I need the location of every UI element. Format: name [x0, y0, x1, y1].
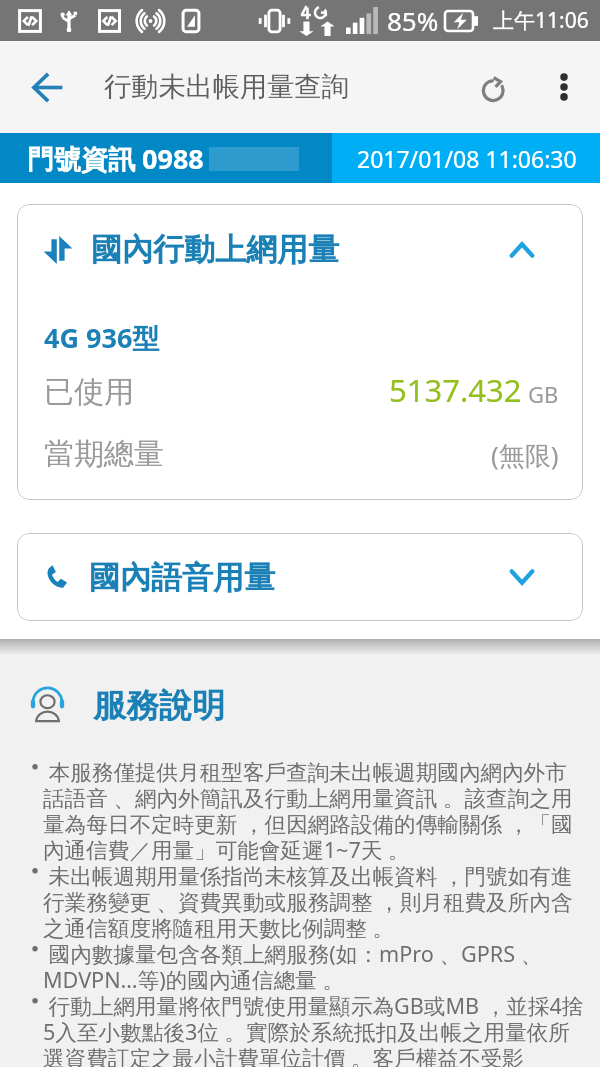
staticText: 國內語音用量 [89, 558, 275, 597]
button[interactable]: More options [531, 41, 597, 133]
button[interactable]: Refresh [457, 41, 531, 133]
staticText: 行動上網用量將依門號使用量顯示為GB或MB ，並採4捨5入至小數點後3位 。實際… [43, 994, 584, 1067]
staticText: 行動未出帳用量查詢 [104, 70, 349, 104]
staticText: 服務說明 [93, 685, 225, 727]
staticText: 國內行動上網用量 [91, 230, 339, 269]
button[interactable]: Back [0, 41, 94, 133]
staticText: 國內數據量包含各類上網服務(如：mPro 、GPRS 、MDVPN…等)的國內通… [43, 942, 584, 994]
button[interactable]: 國內行動上網用量 [17, 204, 583, 295]
staticText: (無限) [491, 437, 559, 473]
staticText: 上午11:06 [493, 6, 589, 35]
staticText: 本服務僅提供月租型客戶查詢未出帳週期國內網內外市話語音 、網內外簡訊及行動上網用… [43, 760, 584, 864]
staticText: 2017/01/08 11:06:30 [357, 143, 577, 174]
staticText: 85% [387, 3, 439, 38]
staticText: GB [528, 379, 559, 409]
staticText: 門號資訊 0988 [27, 140, 204, 177]
staticText: 已使用 [44, 373, 134, 411]
staticText: 5137.432 [389, 369, 522, 411]
staticText: 4G 936型 [44, 319, 160, 356]
button[interactable]: 國內語音用量 [17, 533, 583, 621]
staticText: 未出帳週期用量係指尚未核算及出帳資料 ，門號如有進行業務變更 、資費異動或服務調… [43, 864, 584, 942]
staticText: 當期總量 [44, 435, 164, 473]
